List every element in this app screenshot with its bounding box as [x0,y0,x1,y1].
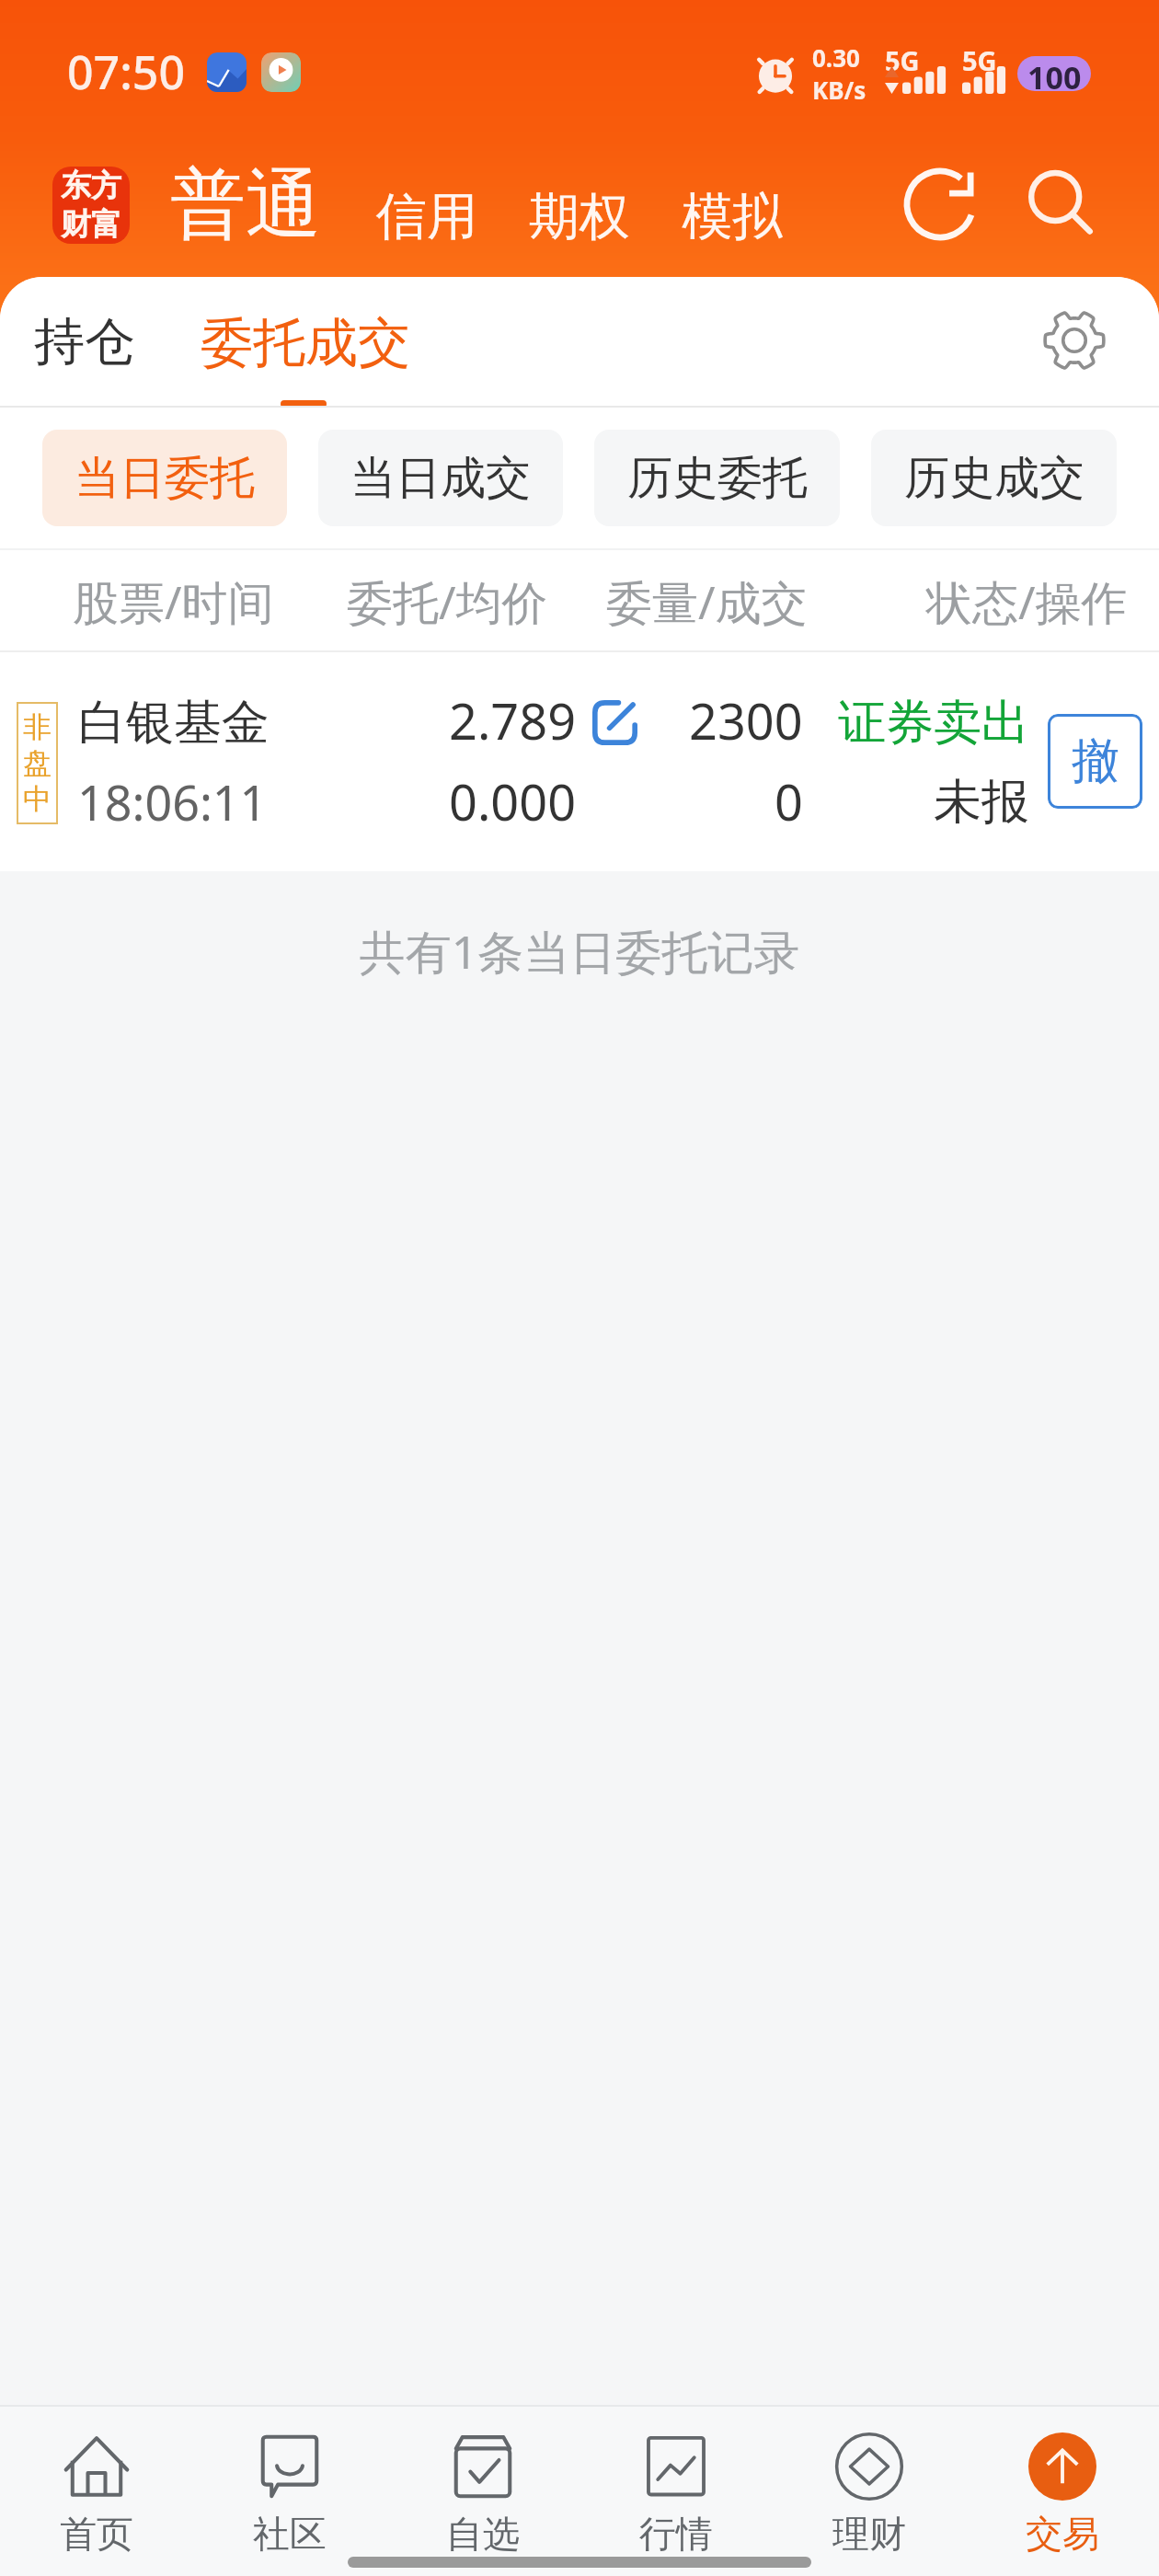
staticText: 中 [23,781,52,817]
staticText: 5G [885,42,920,78]
button[interactable]: 非 [0,652,1159,871]
staticText: 东方 [61,167,121,205]
button[interactable]: 当日委托 [42,430,287,526]
button[interactable]: 交易 [966,2407,1159,2543]
staticText: 委量/成交 [606,570,808,633]
button[interactable]: 持仓 [6,283,163,399]
staticText: 0.000 [449,767,577,835]
staticText: 信用 [376,185,477,248]
button[interactable]: Search [1014,158,1106,250]
staticText: 撤 [1072,731,1119,792]
staticText: 07:50 [67,40,185,103]
staticText: 当日委托 [75,450,255,507]
staticText: 持仓 [34,310,135,374]
staticText: 普通 [170,157,321,252]
staticText: 股票/时间 [73,570,274,633]
staticText: 模拟 [682,185,783,248]
button[interactable]: 撤 [1048,714,1142,809]
staticText: 盘 [23,745,52,781]
staticText: 委托/均价 [347,570,548,633]
button[interactable]: 普通 [170,157,321,252]
staticText: 自选 [446,2511,520,2557]
staticText: 首页 [60,2511,133,2557]
staticText: KB/s [812,74,866,106]
staticText: 状态/操作 [926,570,1128,633]
staticText: 历史成交 [904,450,1084,507]
staticText: 期权 [529,185,630,248]
button[interactable]: 委托成交 [176,285,435,401]
button[interactable]: 信用 [350,185,503,252]
staticText: 18:06:11 [77,769,268,834]
staticText: 当日成交 [350,450,531,507]
button[interactable]: 历史成交 [871,430,1117,526]
staticText: 委托成交 [201,310,410,376]
button[interactable]: 社区 [193,2407,386,2543]
staticText: 100 [1027,56,1082,91]
button[interactable]: 行情 [579,2407,773,2543]
button[interactable]: Settings [1028,294,1120,386]
staticText: 理财 [832,2511,906,2557]
button[interactable]: 当日成交 [318,430,563,526]
staticText: 白银基金 [78,693,270,753]
button[interactable]: 期权 [503,185,656,252]
staticText: 0.30 [812,41,860,74]
button[interactable]: 模拟 [656,185,809,252]
staticText: 5G [962,42,997,78]
staticText: 财富 [61,205,121,244]
staticText: 2.789 [449,686,577,754]
staticText: 证券卖出 [838,693,1029,753]
button[interactable]: 首页 [0,2407,193,2543]
button[interactable]: 历史委托 [594,430,840,526]
button[interactable]: 自选 [386,2407,579,2543]
staticText: 社区 [253,2511,327,2557]
staticText: 行情 [639,2511,713,2557]
staticText: 0 [775,767,803,835]
button[interactable]: 理财 [773,2407,966,2543]
staticText: 历史委托 [627,450,808,507]
staticText: 非 [23,709,52,745]
staticText: 2300 [689,686,803,754]
staticText: 交易 [1026,2511,1099,2557]
staticText: 共有1条当日委托记录 [0,920,1159,983]
button[interactable]: Refresh [894,158,986,250]
staticText: 未报 [934,772,1029,833]
